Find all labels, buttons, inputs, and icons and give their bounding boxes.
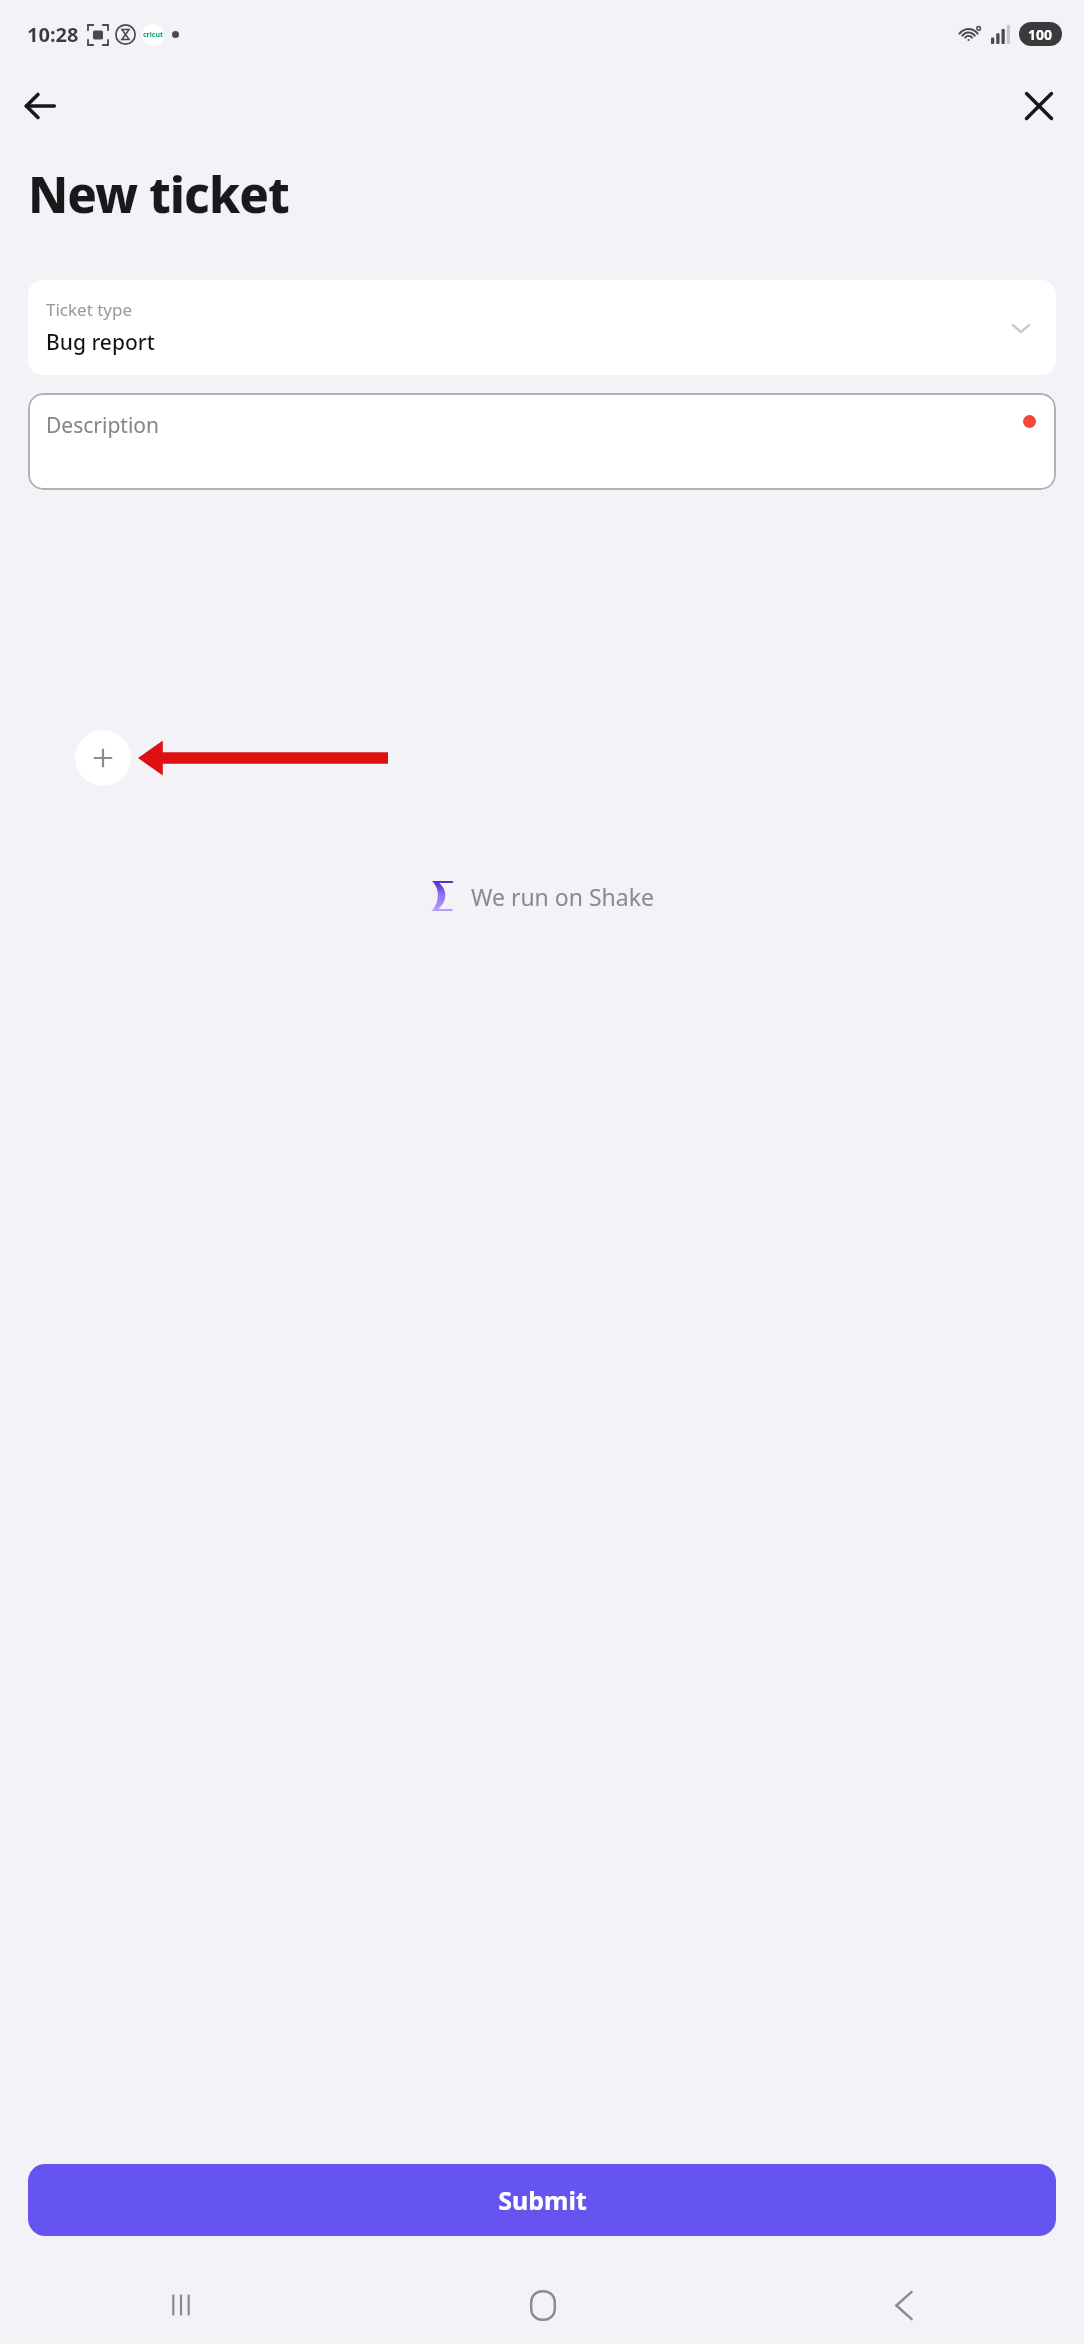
staticText: Submit	[498, 2183, 587, 2217]
staticText: cricut	[143, 30, 164, 40]
staticText: We run on Shake	[471, 881, 654, 912]
button[interactable]: Submit	[28, 2164, 1056, 2236]
staticText: 10:28	[27, 21, 79, 48]
staticText: New ticket	[28, 161, 289, 228]
button[interactable]: Description	[28, 393, 1056, 490]
button[interactable]: Back	[723, 2266, 1084, 2344]
staticText: Description	[46, 411, 160, 440]
button[interactable]: Close	[1011, 78, 1067, 134]
button[interactable]: Home	[362, 2266, 723, 2344]
staticText: Ticket type	[46, 298, 133, 321]
button[interactable]: Ticket type	[28, 280, 1056, 375]
staticText: Bug report	[46, 328, 155, 357]
button[interactable]: Recent apps	[0, 2266, 362, 2344]
button[interactable]: Back	[12, 78, 68, 134]
button[interactable]: Add attachment	[75, 730, 131, 786]
staticText: 100	[1028, 25, 1053, 44]
